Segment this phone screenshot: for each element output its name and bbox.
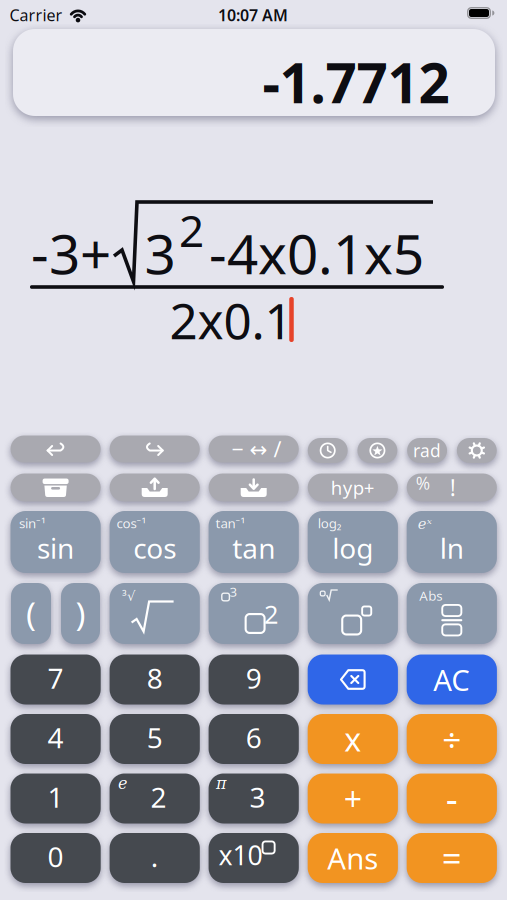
button[interactable]: − ↔ /: [209, 435, 299, 462]
button[interactable]: Undo: [10, 435, 101, 462]
staticText: ln: [440, 529, 464, 567]
staticText: log: [332, 529, 373, 567]
button[interactable]: Square root: [110, 583, 200, 644]
button[interactable]: ÷: [407, 714, 497, 764]
button[interactable]: sin⁻¹: [10, 511, 101, 573]
staticText: !: [450, 472, 456, 502]
button[interactable]: 1: [10, 773, 101, 823]
button[interactable]: Exponent: [209, 833, 299, 883]
staticText: ³√: [122, 587, 135, 604]
button[interactable]: 4: [10, 714, 101, 764]
button[interactable]: -: [407, 773, 497, 823]
staticText: − ↔ /: [232, 435, 282, 463]
staticText: AC: [433, 660, 470, 699]
staticText: Ans: [327, 838, 378, 877]
staticText: log₂: [318, 514, 342, 532]
button[interactable]: Archive: [10, 473, 101, 501]
button[interactable]: 5: [110, 714, 200, 764]
button[interactable]: e: [110, 773, 200, 823]
button[interactable]: Redo: [110, 435, 200, 462]
staticText: .: [151, 838, 159, 875]
staticText: 0: [48, 838, 64, 875]
button[interactable]: 8: [110, 654, 200, 704]
staticText: 2: [151, 778, 167, 816]
button[interactable]: AC: [407, 654, 497, 704]
button[interactable]: Import: [209, 473, 299, 501]
staticText: tan: [232, 529, 275, 567]
button[interactable]: ): [61, 583, 100, 644]
staticText: e: [118, 774, 127, 793]
staticText: %: [416, 471, 430, 494]
staticText: 1: [48, 778, 64, 816]
staticText: hyp+: [331, 475, 375, 500]
staticText: 2: [179, 201, 204, 259]
staticText: sin: [37, 529, 74, 567]
button[interactable]: π: [209, 773, 299, 823]
staticText: 10:07 AM: [218, 4, 288, 26]
button[interactable]: x: [308, 714, 398, 764]
button[interactable]: 0: [10, 833, 101, 883]
button[interactable]: log₂: [308, 511, 398, 573]
staticText: sin⁻¹: [19, 514, 46, 532]
button[interactable]: Export: [110, 473, 200, 501]
button[interactable]: cos⁻¹: [110, 511, 200, 573]
button[interactable]: %: [407, 473, 497, 501]
staticText: Carrier: [9, 4, 62, 26]
staticText: 3: [144, 217, 175, 289]
staticText: x10: [219, 837, 263, 873]
staticText: 2: [264, 597, 278, 631]
button[interactable]: =: [407, 833, 497, 883]
staticText: ÷: [442, 717, 461, 761]
button[interactable]: +: [308, 773, 398, 823]
staticText: 4: [48, 719, 64, 756]
staticText: -1.7712: [262, 46, 449, 118]
button[interactable]: tan⁻¹: [209, 511, 299, 573]
staticText: cos: [133, 529, 176, 567]
button[interactable]: Square: [209, 583, 299, 644]
button[interactable]: Fraction: [407, 583, 497, 644]
staticText: -4x0.1x5: [209, 217, 424, 289]
staticText: -: [446, 774, 458, 823]
staticText: eˣ: [418, 515, 432, 533]
button[interactable]: (: [11, 583, 51, 644]
button[interactable]: rad: [407, 438, 447, 463]
staticText: 8: [147, 659, 163, 697]
staticText: tan⁻¹: [216, 514, 246, 532]
button[interactable]: 7: [10, 654, 101, 704]
staticText: =: [442, 835, 462, 881]
staticText: 2x0.1: [169, 287, 292, 353]
button[interactable]: 9: [209, 654, 299, 704]
button[interactable]: History: [308, 438, 348, 463]
staticText: 6: [246, 719, 262, 756]
staticText: π: [216, 774, 227, 793]
staticText: 3: [230, 583, 238, 600]
staticText: 3: [250, 778, 266, 816]
button[interactable]: Favorites: [357, 438, 397, 463]
staticText: ): [75, 591, 85, 636]
button[interactable]: Power: [308, 583, 398, 644]
button[interactable]: .: [110, 833, 200, 883]
staticText: Abs: [419, 587, 442, 604]
staticText: rad: [413, 439, 441, 462]
button[interactable]: Ans: [308, 833, 398, 883]
button[interactable]: Settings: [457, 438, 497, 463]
button[interactable]: hyp+: [308, 473, 398, 501]
staticText: 7: [48, 659, 64, 697]
button[interactable]: eˣ: [407, 511, 497, 573]
button[interactable]: 6: [209, 714, 299, 764]
staticText: x: [344, 718, 361, 760]
staticText: (: [26, 591, 36, 636]
staticText: -3+: [31, 217, 111, 289]
staticText: 9: [246, 659, 262, 697]
staticText: cos⁻¹: [117, 514, 147, 532]
staticText: +: [344, 777, 362, 820]
button[interactable]: Backspace: [308, 654, 398, 704]
staticText: 5: [147, 719, 163, 756]
